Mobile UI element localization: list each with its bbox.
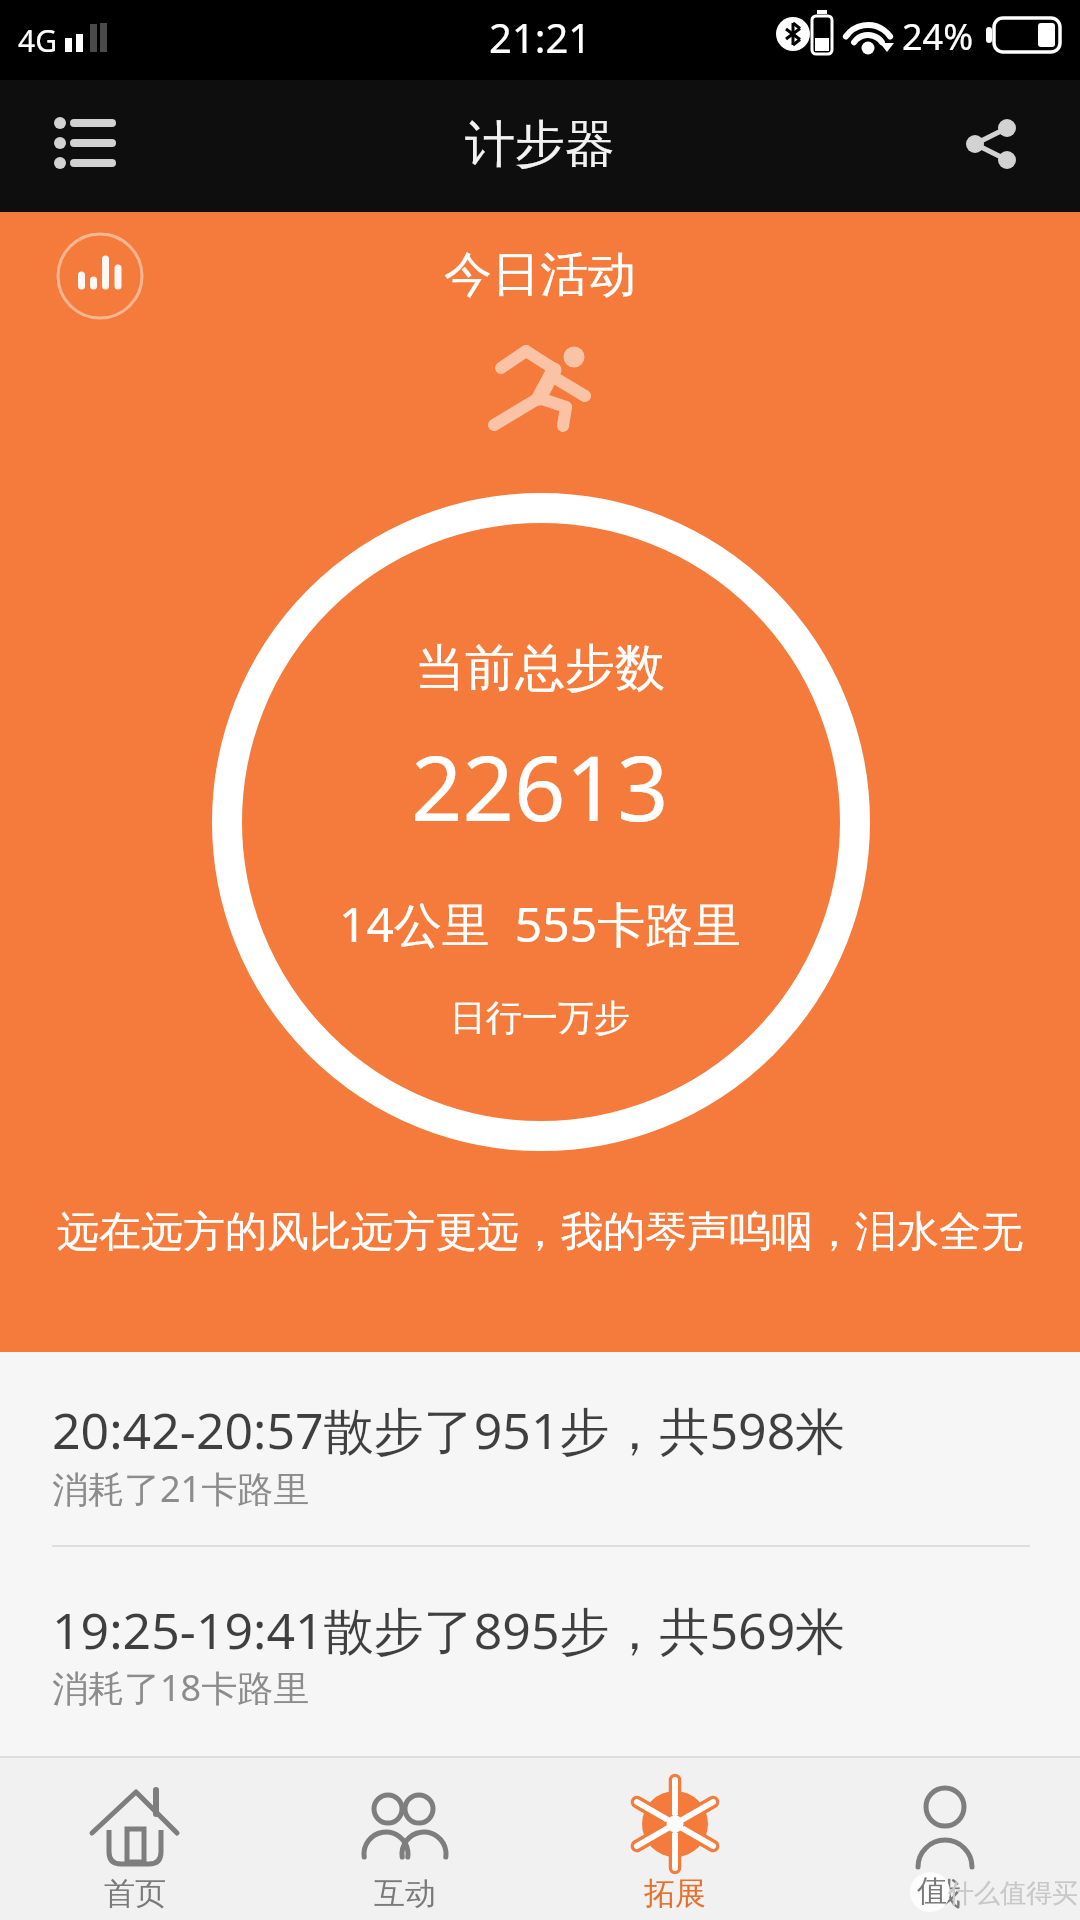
staticText: 拓展 xyxy=(644,1874,706,1913)
button[interactable] xyxy=(934,94,1034,194)
button[interactable]: 首页 xyxy=(0,1758,270,1920)
staticText: 计步器 xyxy=(465,113,615,176)
staticText: 消耗了21卡路里 xyxy=(52,1464,310,1513)
staticText: 值 xyxy=(917,1872,947,1910)
staticText: 互动 xyxy=(374,1874,436,1913)
button[interactable]: 互动 xyxy=(270,1758,540,1920)
staticText: 远在远方的风比远方更远，我的琴声呜咽，泪水全无 xyxy=(57,1206,1023,1259)
staticText: 14公里 555卡路里 xyxy=(339,891,742,957)
staticText: 什么值得买 xyxy=(948,1877,1078,1910)
staticText: 24% xyxy=(902,12,974,61)
staticText: 19:25-19:41散步了895步，共569米 xyxy=(52,1596,846,1664)
staticText: 21:21 xyxy=(489,10,592,64)
staticText: 今日活动 xyxy=(444,245,636,305)
staticText: 消耗了18卡路里 xyxy=(52,1663,310,1712)
staticText: 日行一万步 xyxy=(450,995,630,1040)
button[interactable] xyxy=(36,212,164,340)
staticText: 4G xyxy=(18,20,57,61)
staticText: 当前总步数 xyxy=(415,637,665,700)
staticText: 22613 xyxy=(411,725,669,848)
button[interactable] xyxy=(36,93,136,193)
button[interactable]: 我 xyxy=(810,1758,1080,1920)
staticText: 20:42-20:57散步了951步，共598米 xyxy=(52,1396,846,1464)
staticText: 我 xyxy=(930,1874,961,1913)
button[interactable]: 20:42-20:57散步了951步，共598米 xyxy=(0,1352,1080,1545)
staticText: 首页 xyxy=(104,1874,166,1913)
button[interactable]: 19:25-19:41散步了895步，共569米 xyxy=(0,1547,1080,1744)
button[interactable]: 拓展 xyxy=(540,1758,810,1920)
